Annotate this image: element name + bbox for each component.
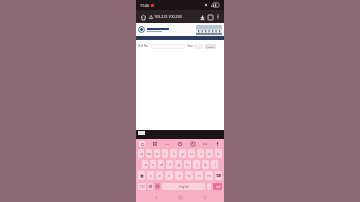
button[interactable]: s (150, 160, 156, 169)
staticText: 4 (165, 149, 167, 152)
staticText: 11:46 (140, 3, 149, 8)
button[interactable]: Themes (151, 140, 158, 147)
staticText: u (190, 151, 193, 156)
staticText: 2 (149, 149, 151, 152)
staticText: n (198, 173, 201, 178)
staticText: v (178, 173, 181, 178)
button[interactable]: GIF (163, 140, 170, 147)
staticText: x (158, 173, 161, 178)
button[interactable]: g (175, 160, 182, 169)
staticText: y (181, 151, 184, 156)
staticText: i (200, 151, 202, 156)
staticText: ?123 (139, 185, 145, 189)
button[interactable]: n (195, 171, 203, 180)
button[interactable]: m (205, 171, 213, 180)
staticText: 3 (157, 149, 159, 152)
staticText: o (208, 151, 211, 156)
button[interactable]: More (201, 140, 208, 147)
button[interactable]: Language (155, 183, 160, 190)
staticText: l (214, 162, 216, 167)
button[interactable]: f (166, 160, 173, 169)
button[interactable]: Emoji (148, 183, 153, 190)
button[interactable]: z (147, 171, 154, 180)
button[interactable]: Tabs (206, 13, 214, 21)
staticText: s (152, 162, 154, 167)
button[interactable]: 7 (188, 149, 195, 158)
button[interactable]: 6 (179, 149, 186, 158)
button[interactable]: 3 (154, 149, 160, 158)
button[interactable]: Back (200, 192, 210, 202)
button[interactable]: Shift (138, 171, 145, 180)
button[interactable]: Stickers (189, 140, 196, 147)
button[interactable]: Download (198, 13, 206, 21)
button[interactable]: v (175, 171, 183, 180)
button[interactable] (151, 44, 185, 49)
button[interactable]: More options (214, 13, 221, 20)
staticText: 8 (201, 149, 203, 152)
button[interactable]: Home (175, 192, 185, 202)
button[interactable]: 103.231.100.203 (149, 14, 198, 19)
button[interactable]: a (142, 160, 148, 169)
staticText: 1 (141, 149, 143, 152)
staticText: . (209, 185, 210, 189)
button[interactable]: English (162, 183, 205, 190)
staticText: c (168, 173, 170, 178)
staticText: Sem (187, 44, 193, 48)
staticText: Roll No. (138, 44, 149, 48)
staticText: English (179, 185, 189, 189)
button[interactable]: Backspace (215, 171, 222, 180)
staticText: j (196, 162, 198, 167)
staticText: d (160, 162, 163, 167)
button[interactable]: 9 (206, 149, 213, 158)
button[interactable]: k (202, 160, 209, 169)
button[interactable]: 0 (215, 149, 222, 158)
staticText: q (140, 151, 143, 156)
staticText: a (144, 162, 147, 167)
button[interactable]: Clipboard (176, 140, 183, 147)
staticText: h (186, 162, 189, 167)
button[interactable]: j (193, 160, 200, 169)
button[interactable]: d (158, 160, 164, 169)
button[interactable]: 1 (138, 149, 144, 158)
button[interactable]: 2 (146, 149, 152, 158)
staticText: m (207, 173, 211, 178)
staticText: Search (207, 45, 215, 48)
button[interactable]: h (184, 160, 191, 169)
staticText: p (217, 151, 220, 156)
staticText: b (188, 173, 191, 178)
button[interactable]: Enter (213, 183, 222, 190)
staticText: r (164, 151, 166, 156)
button[interactable]: Search (205, 44, 216, 49)
staticText: GIF (165, 142, 169, 145)
staticText: w (147, 151, 151, 156)
staticText: 0 (219, 149, 221, 152)
button[interactable]: Keyboard settings (139, 141, 145, 147)
staticText: e (156, 151, 159, 156)
staticText: 7 (192, 149, 194, 152)
button[interactable]: 8 (197, 149, 204, 158)
button[interactable]: 4 (162, 149, 168, 158)
button[interactable]: b (185, 171, 193, 180)
button[interactable]: c (165, 171, 173, 180)
staticText: 9 (210, 149, 212, 152)
button[interactable]: Home (139, 13, 147, 21)
staticText: 5 (174, 149, 176, 152)
button[interactable]: ?123 (138, 183, 146, 190)
staticText: 6 (183, 149, 185, 152)
staticText: k (204, 162, 207, 167)
button[interactable]: Voice input (214, 140, 221, 147)
staticText: f (169, 162, 171, 167)
button[interactable]: l (211, 160, 218, 169)
button[interactable]: . (207, 183, 211, 190)
staticText: t (173, 151, 175, 156)
staticText: g (177, 162, 180, 167)
button[interactable]: x (156, 171, 163, 180)
staticText: z (150, 173, 152, 178)
staticText: 103.231.100.203 (154, 14, 182, 19)
button[interactable]: 5 (170, 149, 177, 158)
button[interactable]: Recents (151, 192, 161, 202)
